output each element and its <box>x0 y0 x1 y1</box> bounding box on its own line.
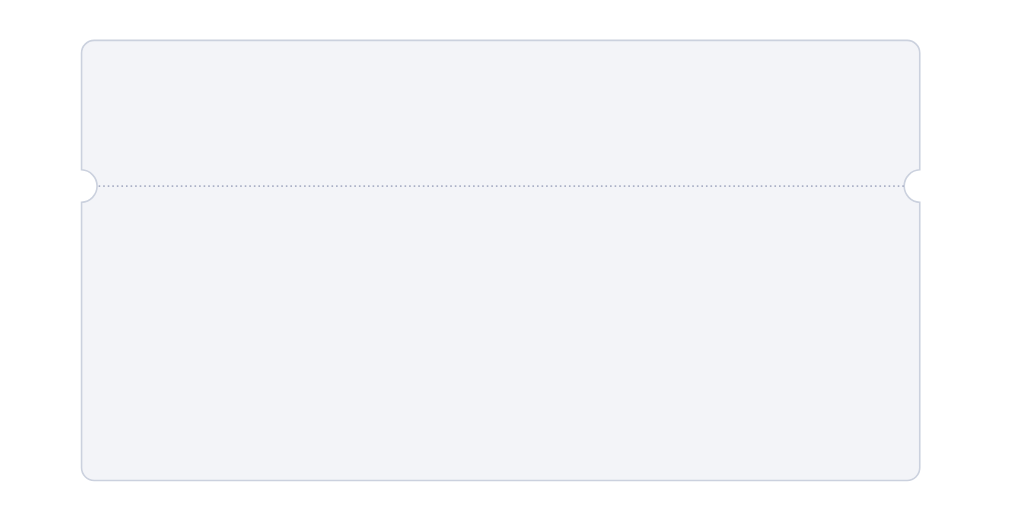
button[interactable]: Ticket <box>0 0 1024 516</box>
